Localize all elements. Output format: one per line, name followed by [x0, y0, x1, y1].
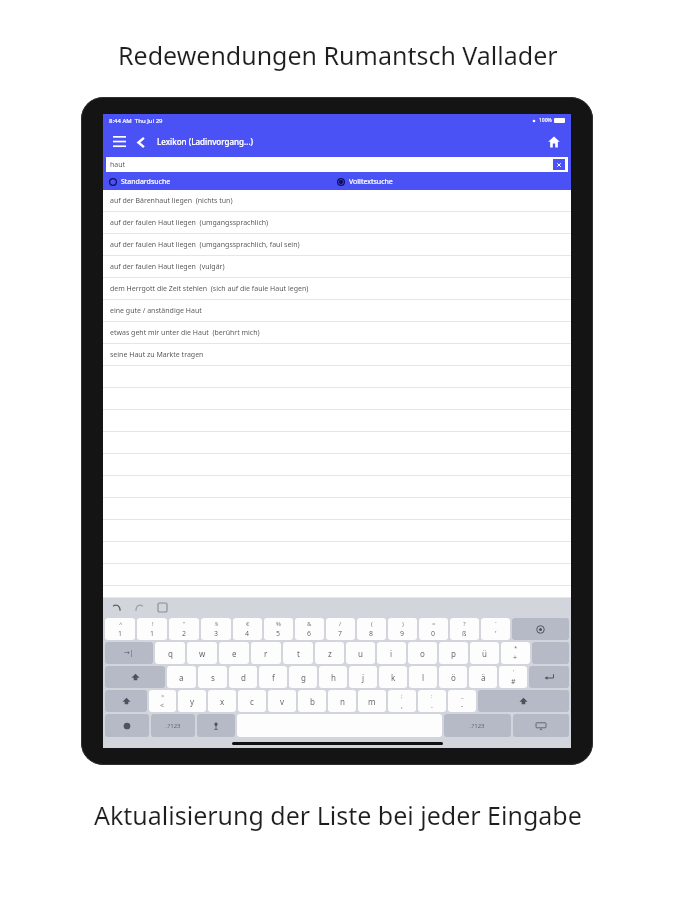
button[interactable]: auf der faulen Haut liegen (vulgär) — [103, 256, 571, 278]
button[interactable]: v — [268, 690, 296, 712]
button[interactable]: etwas geht mir unter die Haut (berührt m… — [103, 322, 571, 344]
staticText: ä — [481, 672, 486, 683]
button[interactable]: m — [358, 690, 386, 712]
staticText: auf der Bärenhaut liegen (nichts tun) — [110, 196, 233, 206]
button[interactable]: t — [283, 642, 313, 664]
button[interactable]: * — [501, 642, 530, 664]
button[interactable]: Return — [529, 666, 569, 688]
staticText: 8:44 AM Thu Jul 29 — [109, 117, 163, 125]
staticText: m — [368, 696, 376, 707]
button[interactable]: § — [201, 618, 231, 640]
staticText: ! — [152, 620, 154, 628]
button[interactable]: Paste — [156, 601, 169, 614]
button[interactable]: Emoji — [105, 714, 149, 737]
button[interactable]: c — [238, 690, 266, 712]
button[interactable]: Volltextsuche — [337, 173, 571, 190]
button[interactable]: % — [264, 618, 293, 640]
button[interactable]: : — [418, 690, 446, 712]
button[interactable]: eine gute / anständige Haut — [103, 300, 571, 322]
button[interactable]: seine Haut zu Markte tragen — [103, 344, 571, 366]
button[interactable]: > — [149, 690, 176, 712]
button[interactable]: y — [178, 690, 206, 712]
button[interactable]: Standardsuche — [109, 173, 337, 190]
button[interactable]: ü — [470, 642, 499, 664]
button[interactable]: x — [208, 690, 236, 712]
button[interactable]: a — [167, 666, 196, 688]
staticText: + — [513, 653, 518, 663]
button[interactable]: Back — [132, 133, 150, 151]
button[interactable]: k — [379, 666, 407, 688]
button[interactable]: Redo — [133, 601, 146, 614]
button[interactable]: Dictate — [197, 714, 235, 737]
button[interactable]: ) — [388, 618, 417, 640]
button[interactable]: " — [169, 618, 199, 640]
staticText: j — [362, 672, 365, 683]
button[interactable]: ' — [499, 666, 527, 688]
button[interactable]: Clear — [553, 159, 565, 170]
button[interactable]: Hide keyboard — [513, 714, 569, 737]
staticText: k — [391, 672, 396, 683]
button[interactable]: auf der faulen Haut liegen (umgangssprac… — [103, 212, 571, 234]
button[interactable]: auf der Bärenhaut liegen (nichts tun) — [103, 190, 571, 212]
button[interactable]: o — [408, 642, 437, 664]
button[interactable]: ö — [439, 666, 467, 688]
button[interactable]: Home — [544, 132, 564, 152]
button[interactable]: d — [229, 666, 257, 688]
staticText: x — [220, 696, 225, 707]
staticText: 5 — [276, 629, 281, 639]
staticText: auf der faulen Haut liegen (vulgär) — [110, 262, 225, 272]
button[interactable]: € — [233, 618, 262, 640]
button[interactable]: auf der faulen Haut liegen (umgangssprac… — [103, 234, 571, 256]
staticText: 8 — [369, 629, 374, 639]
button[interactable]: Shift left — [105, 690, 147, 712]
staticText: Volltextsuche — [349, 177, 393, 187]
button[interactable]: ä — [469, 666, 497, 688]
button[interactable]: Shift — [105, 666, 165, 688]
button[interactable]: ; — [388, 690, 416, 712]
button[interactable]: b — [298, 690, 326, 712]
button[interactable]: ! — [137, 618, 167, 640]
staticText: t — [297, 648, 300, 659]
button[interactable]: u — [346, 642, 375, 664]
button[interactable]: / — [326, 618, 355, 640]
staticText: r — [264, 648, 268, 659]
button[interactable]: s — [198, 666, 227, 688]
button[interactable]: _ — [448, 690, 476, 712]
staticText: auf der faulen Haut liegen (umgangssprac… — [110, 240, 300, 250]
button[interactable]: Backspace — [512, 618, 569, 640]
button[interactable]: g — [289, 666, 317, 688]
button[interactable]: f — [259, 666, 287, 688]
button[interactable]: ^ — [105, 618, 135, 640]
button[interactable]: z — [315, 642, 344, 664]
button[interactable]: i — [377, 642, 406, 664]
button[interactable]: Shift right — [478, 690, 569, 712]
button[interactable]: Undo — [110, 601, 123, 614]
button[interactable]: Numbers left — [151, 714, 195, 737]
button[interactable]: Tab — [105, 642, 153, 664]
button[interactable]: dem Herrgott die Zeit stehlen (sich auf … — [103, 278, 571, 300]
button[interactable]: ( — [357, 618, 386, 640]
button[interactable]: h — [319, 666, 347, 688]
button[interactable]: Menu — [110, 133, 128, 151]
button[interactable]: ` — [481, 618, 510, 640]
button[interactable]: w — [187, 642, 217, 664]
button[interactable]: q — [155, 642, 185, 664]
button[interactable]: haut — [106, 157, 568, 172]
staticText: →| — [124, 648, 134, 658]
button[interactable]: & — [295, 618, 324, 640]
button[interactable]: r — [251, 642, 281, 664]
button[interactable]: j — [349, 666, 377, 688]
staticText: a — [179, 672, 184, 683]
button[interactable]: l — [409, 666, 437, 688]
staticText: ' — [495, 629, 497, 639]
button[interactable]: ? — [450, 618, 479, 640]
staticText: etwas geht mir unter die Haut (berührt m… — [110, 328, 260, 338]
staticText: : — [431, 692, 433, 700]
button[interactable]: p — [439, 642, 468, 664]
button[interactable]: n — [328, 690, 356, 712]
button[interactable]: Numbers right — [444, 714, 511, 737]
button[interactable]: = — [419, 618, 448, 640]
button[interactable]: e — [219, 642, 249, 664]
